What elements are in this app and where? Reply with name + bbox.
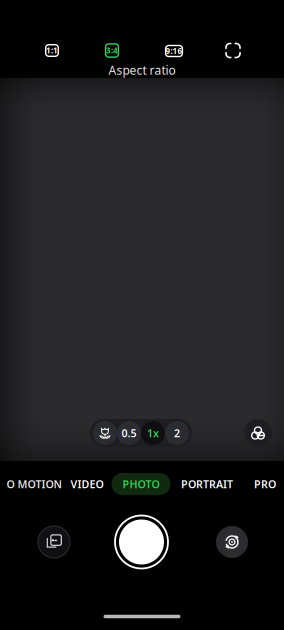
staticText: 9:16 bbox=[165, 46, 182, 56]
button[interactable]: 0.5 bbox=[117, 421, 141, 445]
button[interactable]: 1:1 bbox=[35, 36, 69, 64]
staticText: VIDEO bbox=[70, 477, 103, 491]
button[interactable]: Full screen bbox=[216, 36, 250, 64]
button[interactable]: Filters bbox=[244, 419, 272, 447]
button[interactable]: 1x bbox=[141, 421, 165, 445]
staticText: 0.5 bbox=[121, 426, 136, 440]
staticText: 2 bbox=[174, 426, 180, 440]
staticText: 3:4 bbox=[106, 45, 118, 56]
staticText: 1x bbox=[147, 426, 159, 440]
button[interactable]: SLO MOTION bbox=[0, 473, 72, 495]
button[interactable]: 2 bbox=[165, 421, 189, 445]
button[interactable]: 3:4 bbox=[95, 36, 129, 64]
staticText: PHOTO bbox=[122, 477, 159, 491]
staticText: 1:1 bbox=[46, 45, 58, 56]
button[interactable]: 9:16 bbox=[157, 37, 191, 65]
button[interactable]: Photo library bbox=[38, 526, 70, 558]
button[interactable]: PHOTO bbox=[111, 473, 170, 495]
button[interactable]: Macro bbox=[93, 421, 117, 445]
staticText: PRO bbox=[254, 477, 276, 491]
button[interactable]: VIDEO bbox=[59, 473, 114, 495]
staticText: PORTRAIT bbox=[181, 477, 233, 491]
button[interactable]: Switch camera bbox=[216, 526, 248, 558]
button[interactable]: Shutter bbox=[114, 515, 168, 569]
staticText: SLO MOTION bbox=[0, 477, 61, 491]
staticText: Aspect ratio bbox=[108, 62, 175, 78]
button[interactable]: PORTRAIT bbox=[170, 473, 244, 495]
button[interactable]: PRO bbox=[243, 473, 284, 495]
